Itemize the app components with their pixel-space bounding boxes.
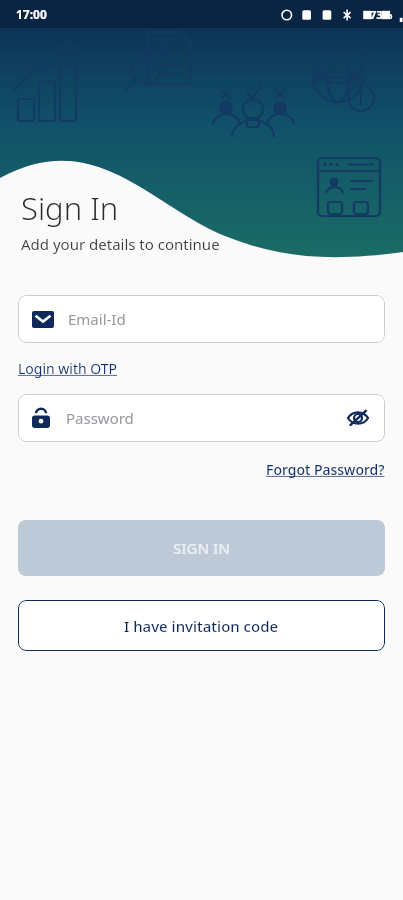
staticText: 73%	[370, 7, 393, 22]
button[interactable]: Email-Id	[18, 295, 385, 343]
staticText: Email-Id	[68, 309, 126, 329]
staticText: Sign In	[21, 187, 119, 229]
button[interactable]: Forgot Password?	[266, 460, 385, 479]
staticText: I have invitation code	[124, 616, 279, 636]
staticText: Login with OTP	[18, 359, 118, 378]
button[interactable]: I have invitation code	[18, 600, 385, 651]
button[interactable]: SIGN IN	[18, 520, 385, 576]
staticText: Add your details to continue	[21, 234, 220, 254]
staticText: Forgot Password?	[266, 460, 385, 479]
button[interactable]: Show password	[345, 405, 371, 431]
staticText: SIGN IN	[173, 538, 230, 558]
staticText: Password	[66, 408, 345, 428]
staticText: 17:00	[16, 6, 47, 22]
button[interactable]: Login with OTP	[18, 359, 118, 378]
button[interactable]: Password	[18, 394, 385, 442]
